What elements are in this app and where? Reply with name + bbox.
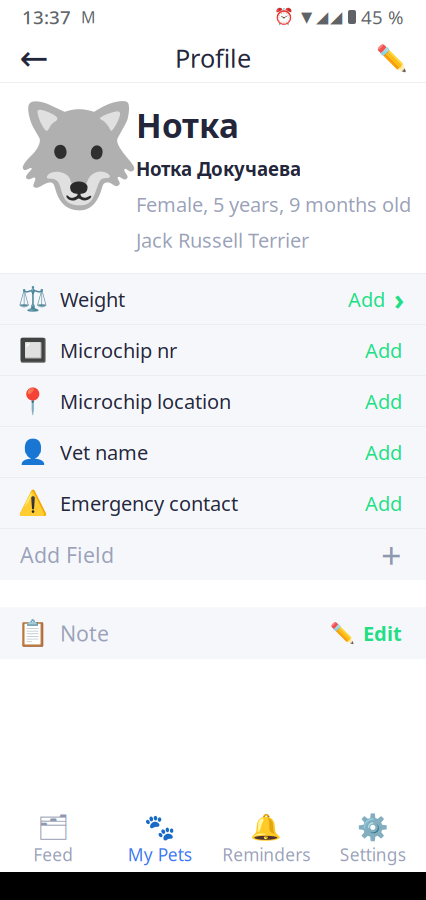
staticText: Microchip location (60, 388, 231, 414)
staticText: 13:37 (22, 5, 71, 29)
staticText: Edit (363, 620, 402, 646)
staticText: 45 % (361, 5, 404, 29)
staticText: 👤 (18, 438, 48, 466)
button[interactable]: ⚙️ (319, 808, 426, 874)
button[interactable]: 👤 (0, 427, 426, 478)
staticText: ◢ (316, 8, 328, 26)
staticText: Jack Russell Terrier (136, 227, 309, 253)
staticText: › (394, 281, 404, 318)
staticText: 🗂 (37, 812, 69, 841)
staticText: Vet name (60, 439, 148, 465)
button[interactable]: 📋 (0, 607, 426, 659)
button[interactable]: ⚖️ (0, 274, 426, 325)
staticText: ▼ (301, 9, 312, 25)
staticText: ✏️ (376, 43, 408, 72)
button[interactable]: Back (10, 34, 58, 82)
staticText: Reminders (222, 843, 310, 866)
staticText: Add (365, 439, 402, 465)
staticText: Note (60, 619, 109, 647)
staticText: Add (365, 337, 402, 363)
button[interactable]: Edit profile (368, 34, 416, 82)
staticText: Female, 5 years, 9 months old (136, 191, 411, 218)
staticText: 🐺 (15, 97, 141, 213)
staticText: Add (365, 490, 402, 516)
staticText: + (381, 531, 402, 579)
staticText: ← (19, 38, 48, 78)
staticText: Add Field (20, 540, 114, 569)
staticText: Microchip nr (60, 337, 177, 363)
staticText: Emergency contact (60, 490, 238, 516)
button[interactable]: 🗂 (0, 808, 106, 874)
button[interactable]: 🐾 (106, 808, 213, 874)
staticText: 🔔 (250, 812, 282, 841)
staticText: ⚙️ (357, 812, 389, 841)
button[interactable]: ⚠️ (0, 478, 426, 529)
staticText: M (81, 6, 96, 28)
staticText: ⚠️ (18, 489, 48, 517)
staticText: Weight (60, 286, 125, 312)
staticText: 📋 (17, 619, 49, 648)
staticText: Add (365, 388, 402, 414)
staticText: Settings (340, 843, 406, 866)
staticText: ✏️ (330, 622, 355, 645)
staticText: Нотка (136, 103, 239, 147)
staticText: Add (348, 286, 385, 312)
staticText: My Pets (128, 843, 192, 866)
staticText: Feed (33, 843, 73, 866)
button[interactable]: Add Field (0, 529, 426, 580)
staticText: Profile (175, 41, 251, 75)
button[interactable]: 📍 (0, 376, 426, 427)
staticText: 🐾 (144, 812, 176, 841)
staticText: ◢ (330, 8, 342, 26)
staticText: 📍 (17, 387, 49, 416)
staticText: ⚖️ (18, 285, 48, 313)
staticText: ⏰ (274, 8, 294, 26)
staticText: 🔲 (19, 337, 47, 363)
button[interactable]: 🔔 (213, 808, 319, 874)
button[interactable]: 🔲 (0, 325, 426, 376)
staticText: Нотка Докучаева (136, 156, 301, 181)
